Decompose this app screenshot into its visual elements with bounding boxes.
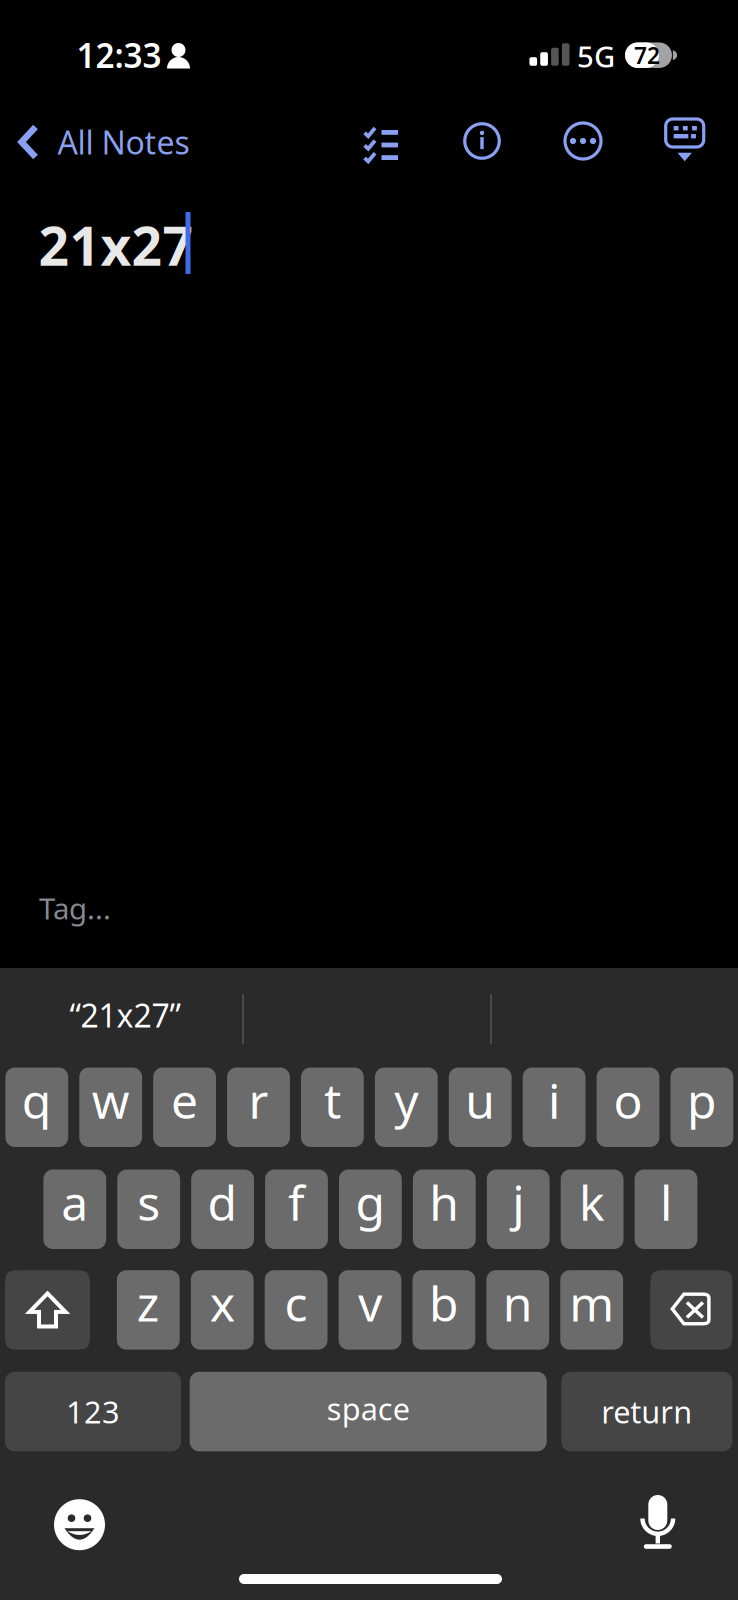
button[interactable]: m	[560, 1270, 623, 1350]
staticText: o	[613, 1068, 642, 1132]
button[interactable]: t	[301, 1067, 364, 1147]
staticText: l	[660, 1170, 672, 1234]
staticText: b	[429, 1271, 459, 1335]
staticText: g	[355, 1170, 385, 1234]
staticText: u	[465, 1068, 495, 1132]
staticText: “21x27”	[69, 994, 180, 1036]
staticText: n	[503, 1271, 533, 1335]
button[interactable]: Emoji	[46, 1491, 113, 1558]
button[interactable]: i	[523, 1067, 585, 1147]
button[interactable]: a	[43, 1169, 106, 1249]
button[interactable]: Checklist	[355, 118, 407, 165]
button[interactable]: All Notes	[18, 111, 189, 173]
staticText: h	[429, 1170, 459, 1234]
staticText: i	[548, 1068, 560, 1132]
staticText: j	[512, 1170, 524, 1234]
staticText: r	[248, 1068, 268, 1132]
staticText: s	[137, 1170, 160, 1234]
button[interactable]: l	[635, 1169, 697, 1249]
button[interactable]: u	[449, 1067, 512, 1147]
button[interactable]: o	[597, 1067, 659, 1147]
button[interactable]: g	[339, 1169, 402, 1249]
button[interactable]: Dictate	[632, 1486, 683, 1557]
button[interactable]: space	[190, 1372, 547, 1451]
staticText: 5G	[577, 36, 615, 75]
button[interactable]: x	[191, 1270, 254, 1350]
staticText: d	[208, 1170, 238, 1234]
button[interactable]: k	[561, 1169, 623, 1249]
staticText: v	[358, 1271, 382, 1335]
staticText: 12:33	[76, 33, 161, 77]
button[interactable]: w	[79, 1067, 142, 1147]
staticText: x	[210, 1271, 235, 1335]
staticText: All Notes	[57, 121, 189, 163]
button[interactable]: h	[413, 1169, 476, 1249]
staticText: 123	[66, 1391, 120, 1432]
button[interactable]: Tag...	[29, 878, 121, 937]
button[interactable]: Delete	[650, 1270, 732, 1350]
button[interactable]: e	[153, 1067, 216, 1147]
button[interactable]: z	[117, 1270, 180, 1350]
staticText: 72	[634, 40, 660, 70]
button[interactable]: v	[339, 1270, 401, 1350]
button[interactable]: q	[5, 1067, 68, 1147]
button[interactable]: n	[486, 1270, 549, 1350]
staticText: e	[171, 1068, 198, 1132]
button[interactable]: p	[670, 1067, 733, 1147]
staticText: c	[285, 1271, 308, 1335]
staticText: Tag...	[39, 888, 111, 927]
button[interactable]: j	[487, 1169, 550, 1249]
button[interactable]: 123	[5, 1372, 181, 1451]
staticText: p	[687, 1068, 717, 1132]
staticText: m	[569, 1271, 614, 1335]
staticText: k	[579, 1170, 605, 1234]
button[interactable]: s	[117, 1169, 180, 1249]
button[interactable]: Hide Keyboard	[659, 112, 711, 172]
staticText: f	[288, 1170, 305, 1234]
button[interactable]: b	[412, 1270, 475, 1350]
button[interactable]: y	[375, 1067, 438, 1147]
button[interactable]: d	[191, 1169, 254, 1249]
button[interactable]: Shift	[5, 1270, 90, 1350]
staticText: y	[394, 1068, 418, 1132]
staticText: t	[324, 1068, 341, 1132]
staticText: space	[327, 1388, 410, 1429]
button[interactable]: “21x27”	[61, 986, 188, 1044]
button[interactable]: c	[265, 1270, 327, 1350]
staticText: q	[22, 1068, 52, 1132]
staticText: return	[601, 1391, 692, 1432]
button[interactable]: return	[561, 1372, 732, 1451]
staticText: 21x27	[38, 210, 193, 280]
button[interactable]: More	[555, 113, 610, 168]
button[interactable]: Info	[455, 114, 509, 168]
staticText: w	[92, 1068, 130, 1132]
staticText: z	[137, 1271, 160, 1335]
staticText: a	[61, 1170, 88, 1234]
button[interactable]: r	[227, 1067, 290, 1147]
button[interactable]: f	[265, 1169, 328, 1249]
